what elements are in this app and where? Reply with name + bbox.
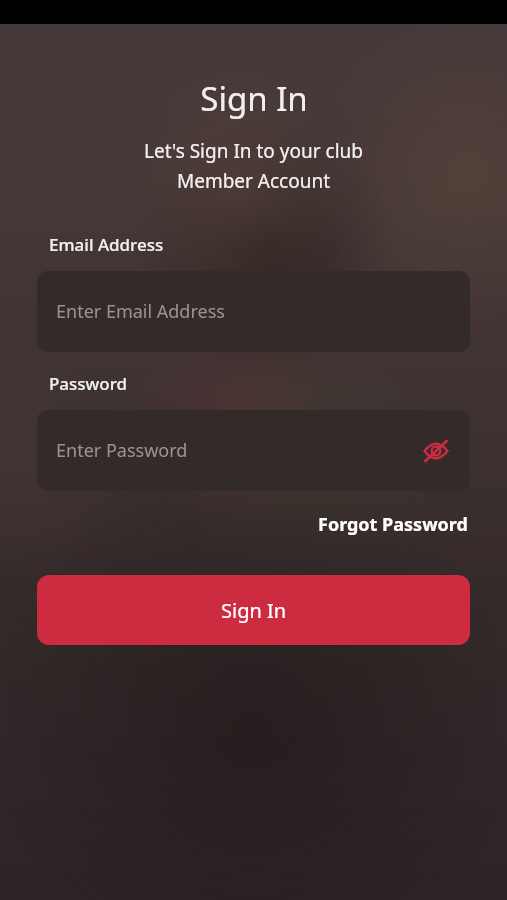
staticText: Password bbox=[49, 372, 128, 395]
staticText: Sign In bbox=[221, 597, 287, 624]
button[interactable]: Sign In bbox=[37, 575, 470, 645]
button[interactable]: Forgot Password bbox=[316, 508, 470, 541]
staticText: Enter Email Address bbox=[56, 299, 225, 324]
button[interactable]: Enter Email Address bbox=[37, 271, 470, 352]
button[interactable]: Show password bbox=[419, 434, 453, 468]
button[interactable]: Enter Password bbox=[37, 410, 470, 491]
staticText: Forgot Password bbox=[318, 512, 468, 537]
staticText: Email Address bbox=[49, 233, 164, 256]
staticText: Let's Sign In to your club Member Accoun… bbox=[144, 138, 363, 193]
staticText: Enter Password bbox=[56, 438, 188, 463]
staticText: Sign In bbox=[200, 76, 308, 121]
